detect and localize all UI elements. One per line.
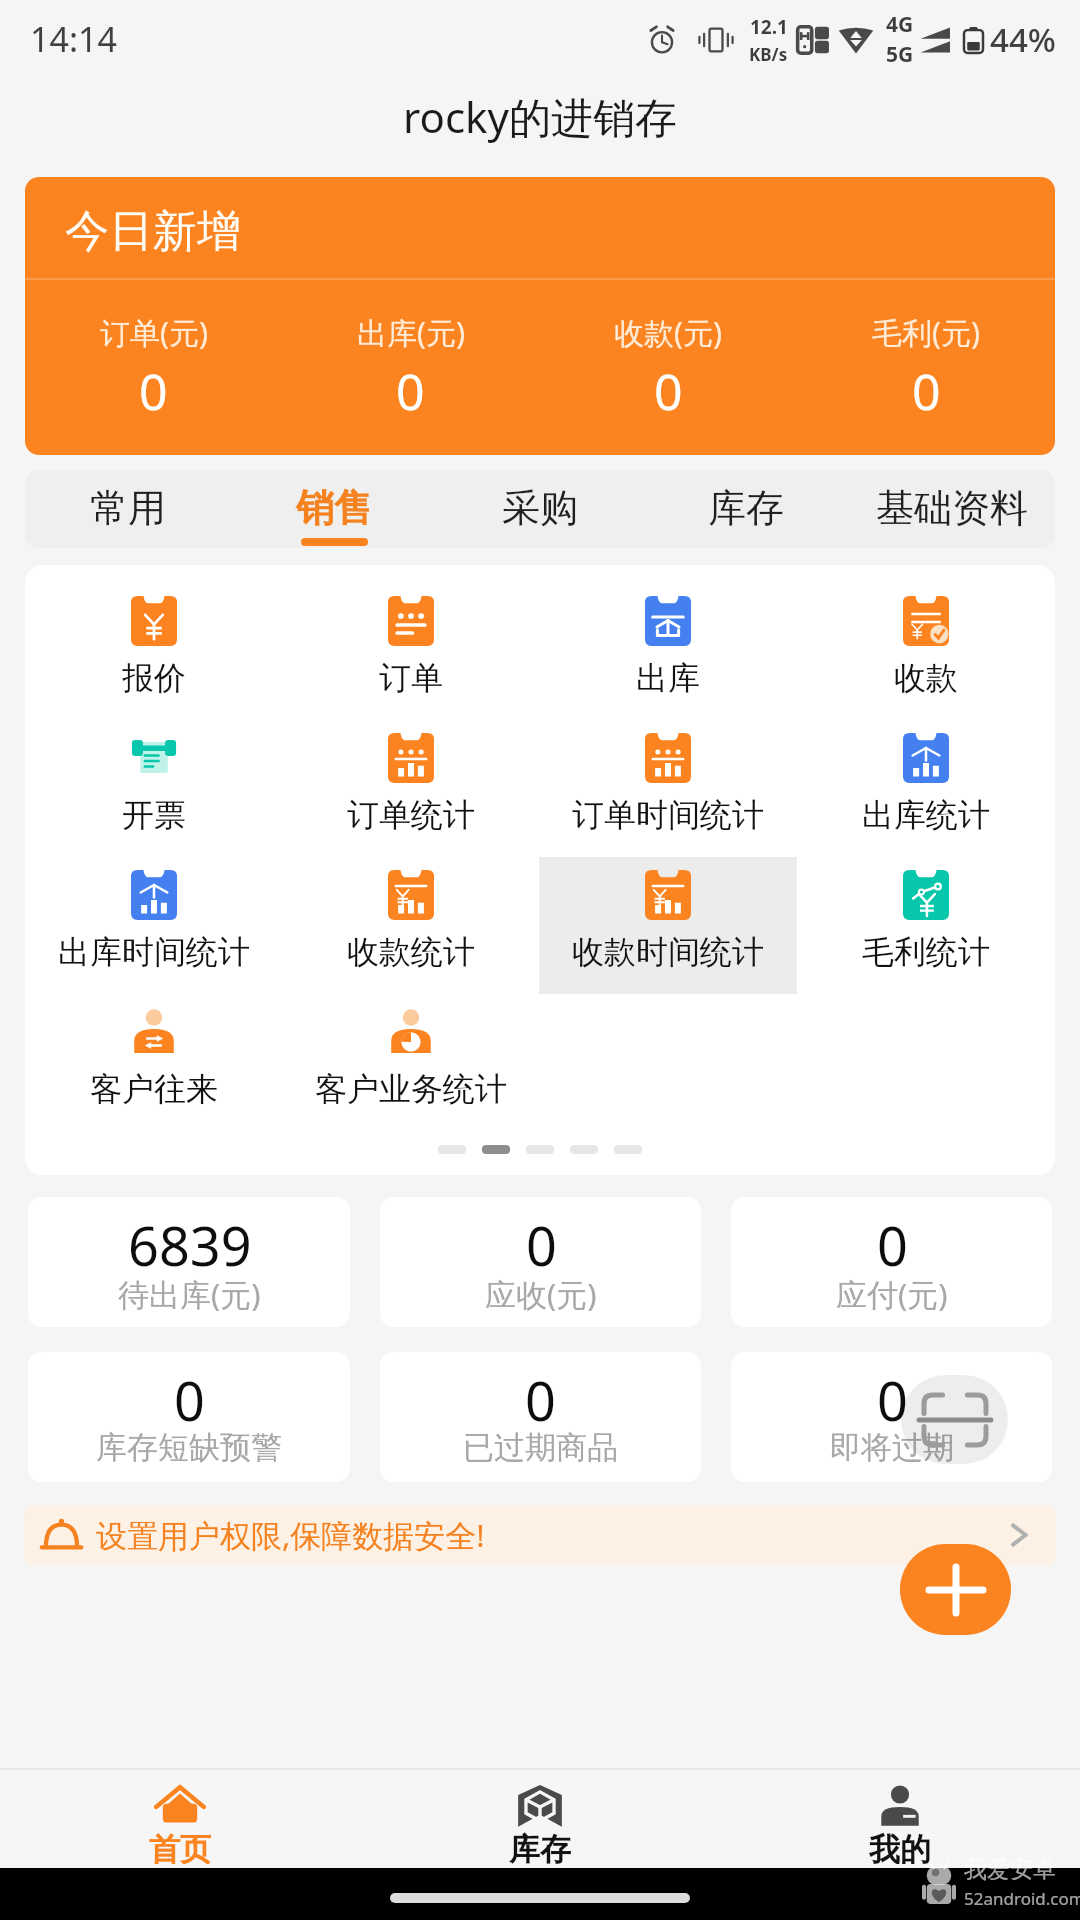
button[interactable]: 0 — [380, 1352, 701, 1482]
staticText: 报价 — [122, 658, 186, 698]
button[interactable]: 今日新增 — [25, 177, 1055, 455]
staticText: 订单(元) — [100, 312, 208, 353]
button[interactable]: 报价 — [25, 583, 282, 720]
staticText: 客户业务统计 — [315, 1069, 507, 1109]
staticText: 出库统计 — [862, 795, 990, 835]
staticText: 已过期商品 — [463, 1428, 618, 1467]
button[interactable]: 库存 — [643, 470, 849, 548]
staticText: 订单 — [379, 658, 443, 698]
button[interactable]: 0 — [380, 1197, 701, 1327]
button[interactable]: 采购 — [437, 470, 643, 548]
staticText: 0 — [877, 1208, 908, 1282]
button[interactable]: 收款 — [797, 583, 1055, 720]
staticText: 0 — [877, 1363, 908, 1437]
staticText: 设置用户权限,保障数据安全! — [96, 1514, 485, 1556]
button[interactable]: 出库 — [539, 583, 797, 720]
staticText: 0 — [396, 357, 425, 425]
button[interactable]: Scan — [901, 1375, 1008, 1464]
button[interactable]: 0 — [28, 1352, 350, 1482]
button[interactable]: 常用 — [25, 470, 231, 548]
button[interactable]: 首页 — [0, 1770, 360, 1868]
staticText: 订单统计 — [347, 795, 475, 835]
staticText: 待出库(元) — [118, 1273, 261, 1315]
button[interactable]: 收款时间统计 — [539, 857, 797, 994]
button[interactable]: 订单时间统计 — [539, 720, 797, 857]
staticText: 出库(元) — [357, 312, 465, 353]
button[interactable]: 我的 — [720, 1770, 1080, 1868]
staticText: KB/s — [749, 43, 788, 66]
staticText: 0 — [526, 1208, 557, 1282]
staticText: 我爱安卓 — [964, 1855, 1056, 1884]
staticText: 0 — [174, 1363, 205, 1437]
button[interactable]: 开票 — [25, 720, 282, 857]
button[interactable]: 库存 — [360, 1770, 720, 1868]
staticText: 收款统计 — [347, 932, 475, 972]
staticText: 出库时间统计 — [58, 932, 250, 972]
staticText: 应收(元) — [485, 1273, 597, 1315]
staticText: 订单时间统计 — [572, 795, 764, 835]
staticText: 14:14 — [30, 16, 117, 62]
button[interactable]: 出库统计 — [797, 720, 1055, 857]
button[interactable]: 收款统计 — [282, 857, 539, 994]
staticText: 5G — [886, 40, 914, 69]
button[interactable]: 客户业务统计 — [282, 994, 539, 1131]
button[interactable]: 基础资料 — [849, 470, 1055, 548]
staticText: 常用 — [90, 484, 166, 532]
staticText: 52android.com — [964, 1887, 1080, 1910]
staticText: 即将过期 — [830, 1428, 954, 1467]
button[interactable]: 6839 — [28, 1197, 350, 1327]
staticText: 收款(元) — [614, 312, 722, 353]
staticText: 毛利统计 — [862, 932, 990, 972]
staticText: 我的 — [869, 1830, 931, 1864]
staticText: 44% — [990, 17, 1056, 62]
staticText: 应付(元) — [836, 1273, 948, 1315]
staticText: 6839 — [128, 1208, 252, 1282]
button[interactable]: 0 — [731, 1197, 1052, 1327]
staticText: 库存 — [509, 1830, 571, 1864]
staticText: 4G — [886, 10, 914, 39]
staticText: 12.1 — [750, 14, 788, 40]
staticText: 毛利(元) — [872, 312, 980, 353]
staticText: rocky的进销存 — [403, 88, 677, 145]
button[interactable]: 设置用户权限,保障数据安全! — [24, 1505, 1056, 1565]
staticText: 出库 — [636, 658, 700, 698]
staticText: 销售 — [296, 484, 372, 532]
staticText: 收款 — [894, 658, 958, 698]
button[interactable]: 0 — [731, 1352, 1052, 1482]
staticText: 收款时间统计 — [572, 932, 764, 972]
staticText: 0 — [525, 1363, 556, 1437]
button[interactable]: 销售 — [231, 470, 437, 548]
staticText: 0 — [912, 357, 941, 425]
staticText: 0 — [139, 357, 168, 425]
button[interactable]: Add — [900, 1544, 1011, 1635]
button[interactable]: 出库时间统计 — [25, 857, 282, 994]
button[interactable]: 毛利统计 — [797, 857, 1055, 994]
button[interactable]: 订单统计 — [282, 720, 539, 857]
button[interactable]: 客户往来 — [25, 994, 282, 1131]
staticText: 采购 — [502, 484, 578, 532]
staticText: 库存短缺预警 — [96, 1428, 282, 1467]
staticText: 首页 — [149, 1830, 211, 1864]
staticText: 今日新增 — [65, 204, 241, 259]
staticText: 开票 — [122, 795, 186, 835]
button[interactable]: 订单 — [282, 583, 539, 720]
staticText: 客户往来 — [90, 1069, 218, 1109]
staticText: 库存 — [708, 484, 784, 532]
staticText: 基础资料 — [876, 484, 1028, 532]
staticText: 0 — [654, 357, 683, 425]
